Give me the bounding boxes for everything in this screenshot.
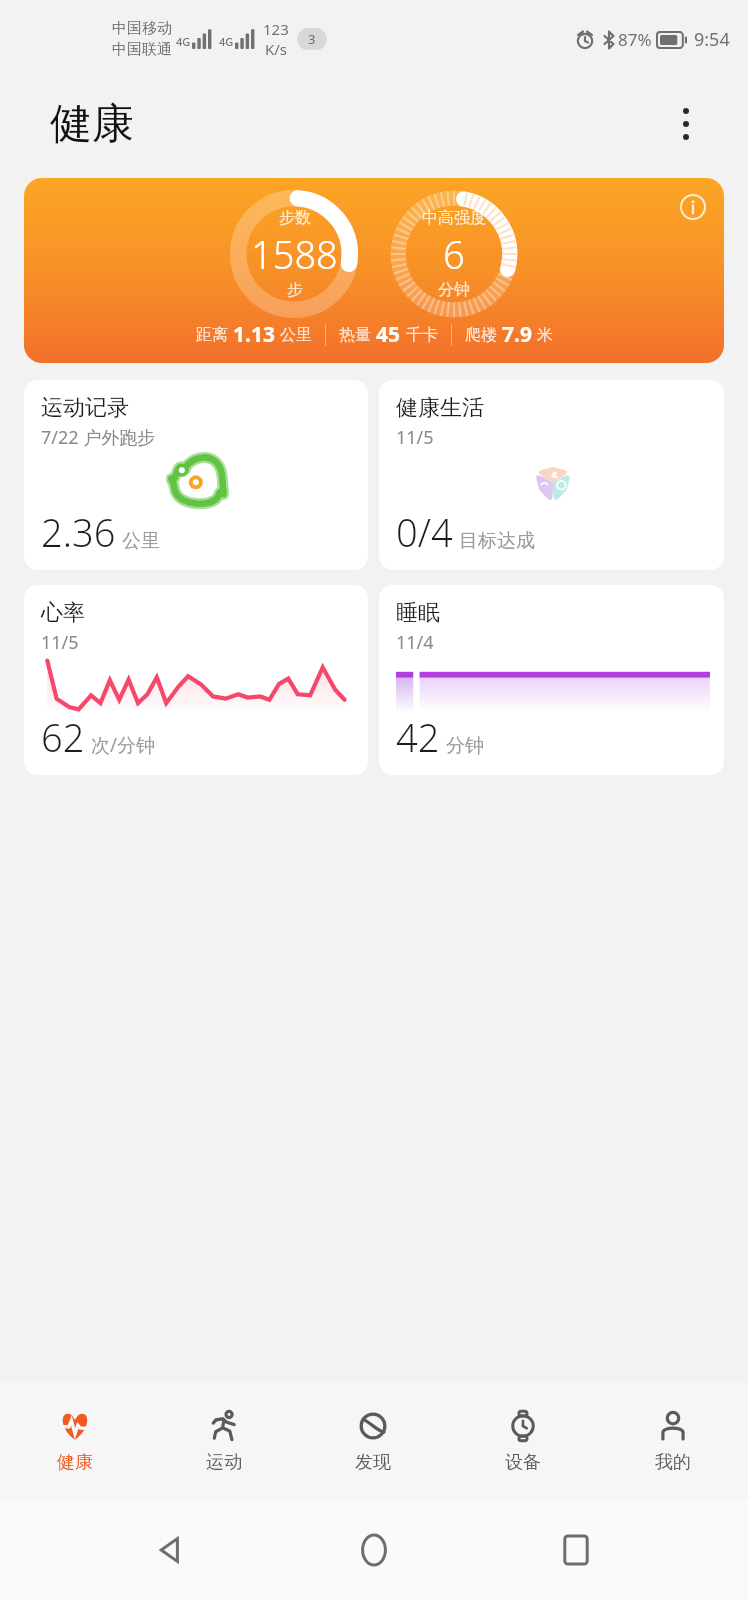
staticText: 123 (263, 19, 289, 39)
staticText: 爬楼 (465, 325, 497, 345)
staticText: 中高强度 (422, 208, 486, 228)
button[interactable]: 设备 (448, 1382, 598, 1500)
button[interactable]: 心率 (24, 585, 368, 775)
staticText: 心率 (41, 599, 85, 627)
staticText: 7/22 户外跑步 (41, 425, 156, 450)
staticText: 3 (308, 30, 316, 48)
staticText: 1588 (251, 228, 338, 280)
button[interactable]: 运动记录 (24, 380, 368, 570)
staticText: 4G (219, 34, 234, 49)
staticText: 公里 (280, 325, 312, 345)
staticText: 热量 (339, 325, 371, 345)
staticText: 11/5 (41, 630, 79, 655)
staticText: 距离 (196, 325, 228, 345)
staticText: 运动记录 (41, 394, 129, 422)
staticText: 11/5 (396, 425, 434, 450)
staticText: 步数 (279, 208, 311, 228)
staticText: 分钟 (446, 734, 484, 758)
button[interactable]: 睡眠 (379, 585, 724, 775)
staticText: 中国移动 (112, 19, 172, 38)
button[interactable]: 发现 (298, 1382, 448, 1500)
staticText: 公里 (122, 529, 160, 553)
button[interactable]: Back (142, 1520, 202, 1580)
staticText: 42 (396, 711, 440, 763)
button[interactable]: Info (676, 190, 710, 224)
button[interactable]: Info (24, 178, 724, 363)
staticText: 9:54 (694, 27, 730, 52)
staticText: 我的 (655, 1451, 691, 1474)
button[interactable]: 运动 (149, 1382, 298, 1500)
staticText: 设备 (505, 1451, 541, 1474)
staticText: 中国联通 (112, 40, 172, 59)
staticText: 1.13 (233, 320, 275, 349)
staticText: 分钟 (438, 280, 470, 300)
button[interactable]: Home (344, 1520, 404, 1580)
staticText: 发现 (355, 1451, 391, 1474)
staticText: 次/分钟 (91, 732, 156, 758)
staticText: 6 (443, 228, 465, 280)
button[interactable]: More options (662, 100, 710, 148)
staticText: 11/4 (396, 630, 434, 655)
staticText: 45 (376, 320, 401, 349)
staticText: 步 (287, 280, 303, 300)
button[interactable]: Recent apps (546, 1520, 606, 1580)
staticText: 健康生活 (396, 394, 484, 422)
staticText: 目标达成 (459, 529, 535, 553)
staticText: 7.9 (502, 320, 532, 349)
button[interactable]: 我的 (598, 1382, 748, 1500)
staticText: 睡眠 (396, 599, 440, 627)
staticText: 健康 (57, 1451, 93, 1474)
button[interactable]: 健康 (0, 1382, 149, 1500)
button[interactable]: 健康生活 (379, 380, 724, 570)
staticText: 健康 (50, 98, 134, 151)
staticText: 62 (41, 711, 85, 763)
staticText: K/s (265, 39, 288, 59)
staticText: 米 (537, 325, 553, 345)
staticText: 千卡 (406, 325, 438, 345)
staticText: 0/4 (396, 506, 453, 558)
staticText: 运动 (206, 1451, 242, 1474)
staticText: 4G (176, 34, 191, 49)
staticText: 2.36 (41, 506, 116, 558)
staticText: 87% (618, 28, 652, 51)
